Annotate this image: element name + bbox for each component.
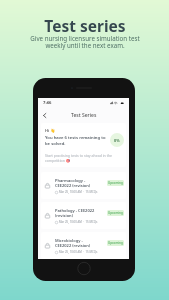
staticText: Microbiology - CEE2022 (revision): [55, 238, 91, 248]
staticText: Mar 25, 10:00 AM · 15 MCQs: [59, 250, 98, 254]
staticText: Test series: [44, 15, 126, 36]
staticText: Hi 👋: [45, 128, 56, 133]
staticText: Mar 25, 10:00 AM · 15 MCQs: [59, 190, 98, 194]
staticText: Give nursing licensure simulation test w…: [30, 34, 140, 50]
staticText: Start practising tests to stay ahead in …: [45, 153, 113, 163]
staticText: Upcoming: [108, 241, 123, 245]
button[interactable]: Microbiology - CEE2022 (revision): [41, 232, 126, 259]
staticText: You have 6 tests remaining to be solved.: [45, 135, 110, 146]
staticText: Pathology - CEE2022 (revision): [55, 208, 95, 218]
staticText: 7:46: [43, 100, 52, 106]
staticText: Pharmacology - CEE2022 (revision): [55, 178, 91, 188]
button[interactable]: Pathology - CEE2022 (revision): [41, 202, 126, 229]
staticText: Mar 25, 10:00 AM · 15 MCQs: [59, 220, 98, 224]
button[interactable]: Pharmacology - CEE2022 (revision): [41, 172, 126, 199]
button[interactable]: Back: [39, 110, 50, 121]
staticText: Test Series: [71, 112, 97, 119]
staticText: Upcoming: [108, 181, 123, 185]
staticText: Upcoming: [108, 211, 123, 215]
button[interactable]: Hi 👋: [41, 123, 126, 167]
staticText: 0%: [114, 138, 120, 143]
